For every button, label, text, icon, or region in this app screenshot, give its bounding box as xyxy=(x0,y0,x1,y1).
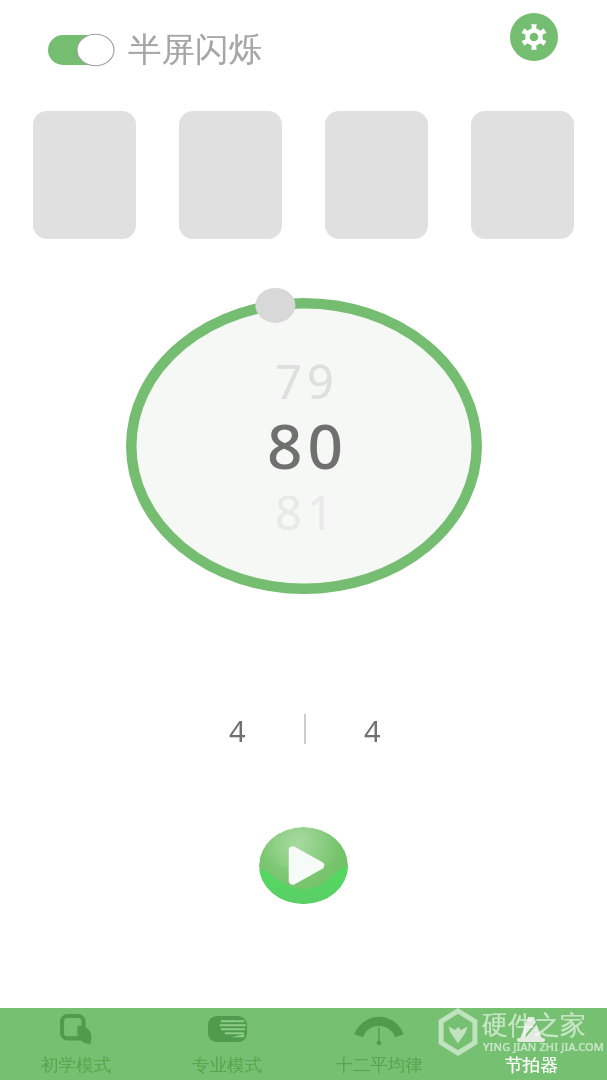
staticText: 节拍器 xyxy=(505,1054,558,1076)
staticText: 81 xyxy=(275,480,339,544)
staticText: 初学模式 xyxy=(41,1054,111,1076)
button[interactable]: 专业模式 xyxy=(151,1008,303,1080)
button[interactable] xyxy=(48,34,114,66)
staticText: 硬件之家 xyxy=(482,1009,586,1042)
button[interactable] xyxy=(33,111,136,239)
staticText: 半屏闪烁 xyxy=(128,29,262,71)
button[interactable]: 4 xyxy=(306,711,439,747)
button[interactable]: 十二平均律 xyxy=(303,1008,455,1080)
staticText: YING JIAN ZHI JIA.COM xyxy=(483,1039,605,1054)
button[interactable]: 初学模式 xyxy=(0,1008,151,1080)
staticText: 4 xyxy=(364,711,381,747)
staticText: 79 xyxy=(275,349,339,413)
staticText: 80 xyxy=(267,403,348,487)
button[interactable] xyxy=(471,111,574,239)
button[interactable]: 4 xyxy=(171,711,304,747)
button[interactable]: Play xyxy=(259,827,348,904)
staticText: 专业模式 xyxy=(192,1054,262,1076)
button[interactable]: Settings xyxy=(510,13,558,61)
button[interactable] xyxy=(325,111,428,239)
button[interactable]: 节拍器 xyxy=(455,1008,607,1080)
button[interactable] xyxy=(179,111,282,239)
staticText: 4 xyxy=(229,711,246,747)
staticText: 十二平均律 xyxy=(335,1054,423,1076)
